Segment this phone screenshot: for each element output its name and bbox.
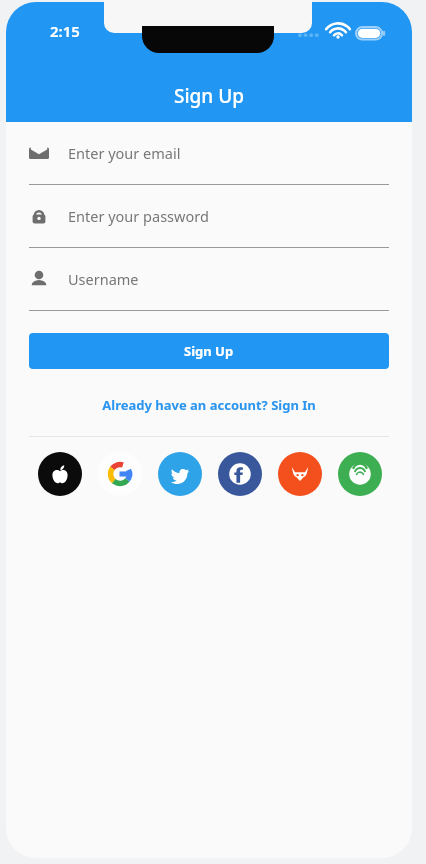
button[interactable]: Enter your email	[6, 122, 412, 185]
staticText: Sign Up	[174, 83, 245, 109]
other: Status icons	[296, 24, 384, 42]
button[interactable]: Sign up with Twitter	[158, 452, 202, 496]
button[interactable]: Sign up with Facebook	[218, 452, 262, 496]
button[interactable]: Already have an account? Sign In	[6, 396, 412, 414]
button[interactable]: Username	[6, 248, 412, 311]
staticText: 2:15	[50, 21, 80, 41]
button[interactable]: Sign up with Spotify	[338, 452, 382, 496]
staticText: Already have an account? Sign In	[102, 396, 316, 414]
button[interactable]: Sign up with Google	[98, 452, 142, 496]
button[interactable]: Sign up with GitLab	[278, 452, 322, 496]
button[interactable]: Sign up with Apple	[38, 452, 82, 496]
button[interactable]: Enter your password	[6, 185, 412, 248]
staticText: Sign Up	[184, 342, 234, 360]
staticText: Enter your email	[68, 143, 181, 163]
button[interactable]: Sign Up	[29, 333, 389, 369]
staticText: Username	[68, 269, 139, 289]
staticText: Enter your password	[68, 206, 209, 226]
